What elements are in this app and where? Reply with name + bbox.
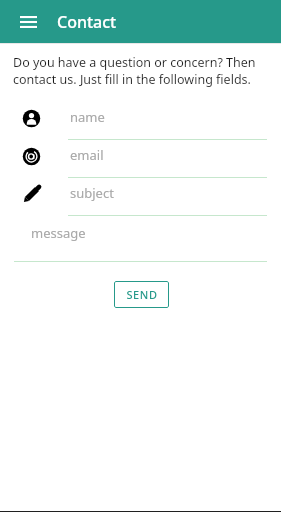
staticText: SEND <box>126 287 158 302</box>
button[interactable]: email <box>0 140 281 178</box>
button[interactable]: message <box>0 218 281 262</box>
staticText: Do you have a question or concern? Then … <box>13 54 256 88</box>
staticText: message <box>31 224 86 242</box>
button[interactable]: SEND <box>114 281 169 308</box>
staticText: name <box>70 108 105 126</box>
button[interactable]: subject <box>0 178 281 216</box>
staticText: email <box>70 146 104 164</box>
button[interactable]: name <box>0 102 281 140</box>
button[interactable]: Open navigation menu <box>10 4 46 40</box>
staticText: subject <box>70 184 114 202</box>
staticText: Contact <box>57 11 117 33</box>
